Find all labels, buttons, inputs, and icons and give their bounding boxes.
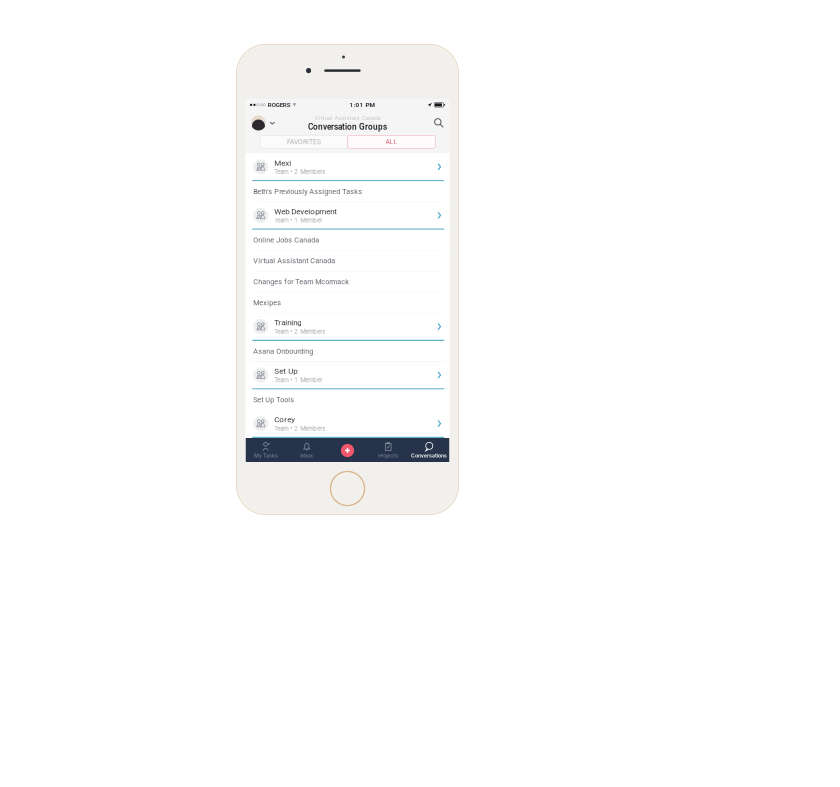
- button[interactable]: Corey: [246, 410, 449, 438]
- staticText: Web Development: [274, 207, 337, 216]
- staticText: Projects: [378, 452, 398, 459]
- staticText: Mexipes: [253, 298, 281, 307]
- staticText: Team • 1 Member: [274, 217, 322, 224]
- staticText: Training: [274, 318, 301, 327]
- button[interactable]: Conversations: [409, 438, 449, 463]
- staticText: Team • 2 Members: [274, 425, 325, 432]
- staticText: Changes for Team Mcormack: [253, 278, 349, 286]
- staticText: Team • 2 Members: [274, 168, 325, 175]
- button[interactable]: My Tasks: [246, 438, 286, 463]
- staticText: Set Up: [274, 366, 297, 376]
- button[interactable]: Search: [434, 118, 444, 128]
- button[interactable]: Web Development: [246, 202, 449, 230]
- button[interactable]: Switch account: [251, 115, 275, 130]
- button[interactable]: FAVORITES: [260, 135, 348, 148]
- button[interactable]: Mexi: [246, 154, 449, 181]
- button[interactable]: Changes for Team Mcormack: [246, 272, 449, 292]
- staticText: ROGERS: [268, 101, 291, 108]
- staticText: Conversation Groups: [308, 122, 387, 132]
- staticText: Set Up Tools: [253, 395, 294, 404]
- staticText: Online Jobs Canada: [253, 236, 319, 244]
- staticText: Team • 1 Member: [274, 376, 322, 384]
- button[interactable]: New conversation: [327, 438, 368, 463]
- button[interactable]: Training: [246, 313, 449, 341]
- button[interactable]: ALL: [348, 135, 435, 148]
- staticText: Corey: [274, 415, 295, 424]
- staticText: Beth's Previously Assigned Tasks: [253, 187, 362, 196]
- staticText: 1:01 PM: [349, 101, 374, 108]
- staticText: Mexi: [274, 158, 291, 168]
- staticText: Virtual Assistant Canada: [253, 257, 335, 265]
- button[interactable]: Beth's Previously Assigned Tasks: [246, 181, 449, 202]
- staticText: FAVORITES: [287, 138, 321, 146]
- button[interactable]: Set Up Tools: [246, 389, 449, 410]
- staticText: My Tasks: [254, 452, 278, 459]
- button[interactable]: Set Up: [246, 362, 449, 389]
- staticText: Conversations: [411, 452, 447, 459]
- button[interactable]: Projects: [368, 438, 409, 463]
- button[interactable]: Asana Onbourding: [246, 341, 449, 362]
- staticText: ALL: [385, 138, 397, 146]
- button[interactable]: Virtual Assistant Canada: [246, 251, 449, 272]
- staticText: Inbox: [300, 452, 313, 459]
- staticText: Asana Onbourding: [253, 347, 313, 355]
- staticText: Team • 2 Members: [274, 328, 325, 335]
- button[interactable]: Inbox: [286, 438, 327, 463]
- button[interactable]: Mexipes: [246, 292, 449, 313]
- button[interactable]: Online Jobs Canada: [246, 230, 449, 251]
- staticText: Virtual Assistant Canada: [314, 114, 380, 121]
